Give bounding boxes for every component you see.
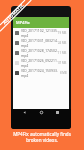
staticText: VID_20171102_121335.mp4 — [21, 28, 58, 38]
button[interactable]: Back — [22, 110, 27, 115]
staticText: AUTOMATIC — [2, 2, 26, 26]
staticText: 8 MB — [60, 71, 67, 75]
button[interactable]: VID_20171031_083214.mp4 — [13, 38, 69, 48]
button[interactable]: VID_20171024_150933.mp4 — [13, 68, 69, 78]
button[interactable]: Home — [39, 110, 44, 115]
staticText: VID_20171026_092211.mp4 — [21, 58, 58, 68]
staticText: MP4Fix — [16, 20, 30, 25]
button[interactable]: VID_20171026_092211.mp4 — [13, 58, 69, 68]
staticText: 24 MB — [58, 41, 67, 45]
staticText: VID_20171028_174502.mp4 — [21, 48, 58, 58]
staticText: 11 MB — [58, 51, 67, 55]
button[interactable]: VID_20171028_174502.mp4 — [13, 48, 69, 58]
staticText: 37 MB — [58, 61, 67, 65]
staticText: VID_20171031_083214.mp4 — [21, 38, 58, 48]
staticText: MP4Fix automatically finds broken videos… — [13, 131, 71, 143]
staticText: VID_20171024_150933.mp4 — [21, 68, 60, 78]
staticText: 19 MB — [58, 31, 67, 35]
button[interactable]: VID_20171102_121335.mp4 — [13, 28, 69, 38]
button[interactable]: Recents — [55, 110, 60, 115]
